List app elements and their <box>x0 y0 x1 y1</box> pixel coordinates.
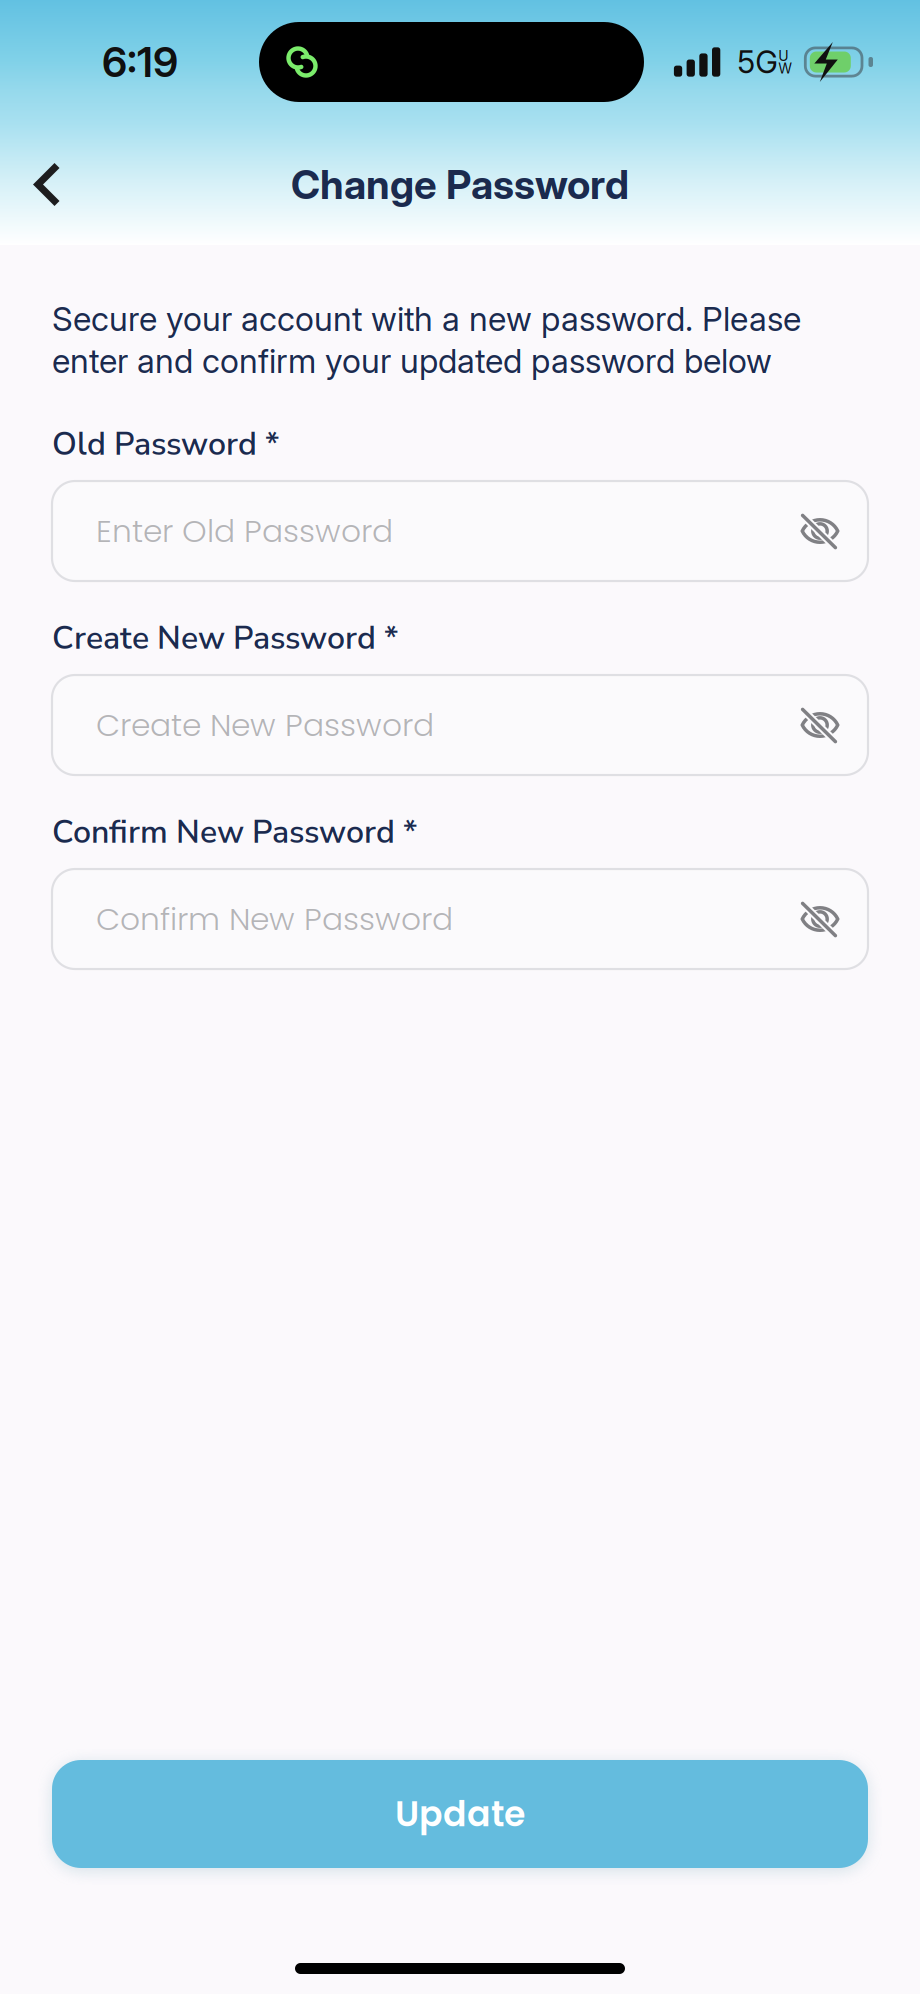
staticText: Confirm New Password <box>96 897 453 941</box>
button[interactable]: Create New Password <box>52 675 868 775</box>
staticText: Secure your account with a new password.… <box>52 299 801 339</box>
button[interactable]: Back <box>8 146 84 222</box>
staticText: Update <box>395 1790 525 1838</box>
staticText: Old Password * <box>52 422 279 466</box>
staticText: Confirm New Password * <box>52 810 417 854</box>
staticText: Change Password <box>291 160 629 209</box>
staticText: W <box>778 60 792 77</box>
staticText: enter and confirm your updated password … <box>52 341 772 381</box>
button[interactable]: Enter Old Password <box>52 481 868 581</box>
staticText: Enter Old Password <box>96 509 393 553</box>
staticText: 5G <box>737 43 778 80</box>
staticText: Create New Password <box>96 703 434 747</box>
staticText: U <box>778 48 788 64</box>
staticText: Create New Password * <box>52 616 398 660</box>
button[interactable]: Confirm New Password <box>52 869 868 969</box>
button[interactable]: Update <box>52 1760 868 1868</box>
staticText: 6:19 <box>102 37 178 87</box>
